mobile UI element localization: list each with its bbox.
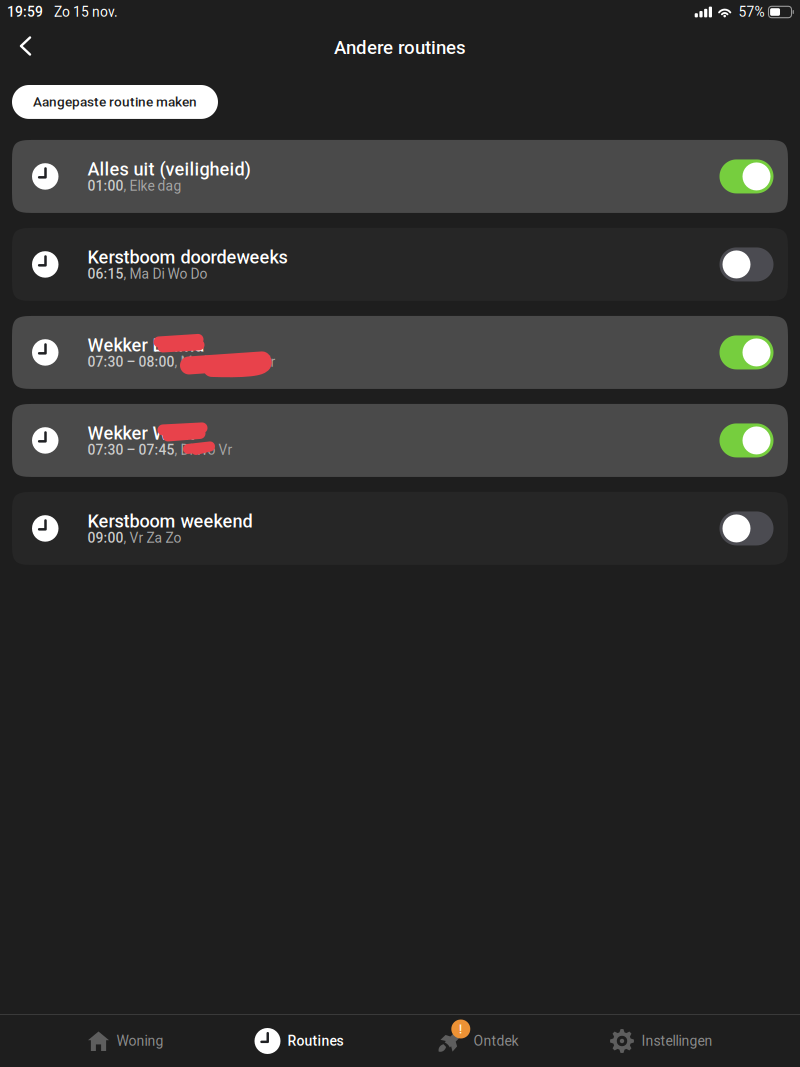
staticText: , Ma Di Wo Do Vr (174, 354, 275, 370)
staticText: 57% (738, 4, 764, 20)
staticText: Wekker Emma (87, 335, 204, 356)
staticText: Aangepaste routine maken (33, 94, 197, 110)
staticText: ! (459, 1021, 463, 1037)
staticText: 07:30 – 07:45 (87, 442, 174, 458)
staticText: 07:30 – 08:00 (87, 354, 174, 370)
staticText: Kerstboom doordeweeks (87, 247, 287, 268)
staticText: , Ma Di Wo Do (123, 266, 207, 282)
staticText: 06:15 (87, 266, 123, 282)
staticText: Zo 15 nov. (54, 4, 118, 20)
button[interactable]: Wekker Wout (12, 404, 788, 477)
button[interactable]: Instellingen (609, 1015, 712, 1067)
staticText: 19:59 (7, 4, 43, 20)
staticText: 01:00 (87, 178, 123, 194)
button[interactable]: Wekker Emma (12, 316, 788, 389)
staticText: Woning (116, 1033, 163, 1049)
staticText: Instellingen (641, 1033, 712, 1049)
staticText: Andere routines (334, 37, 466, 58)
staticText: , Di Wo Vr (174, 442, 232, 458)
staticText: Ontdek (473, 1033, 518, 1049)
button[interactable]: Back (9, 25, 42, 66)
staticText: Routines (287, 1033, 343, 1049)
staticText: , Vr Za Zo (123, 530, 181, 546)
button[interactable]: Aangepaste routine maken (12, 85, 218, 119)
staticText: Alles uit (veiligheid) (87, 159, 250, 180)
staticText: Wekker Wout (87, 423, 194, 444)
button[interactable]: Kerstboom weekend (12, 492, 788, 565)
staticText: 09:00 (87, 530, 123, 546)
button[interactable]: Kerstboom doordeweeks (12, 228, 788, 301)
button[interactable]: ! (434, 1015, 518, 1067)
button[interactable]: Alles uit (veiligheid) (12, 140, 788, 213)
staticText: , Elke dag (123, 178, 181, 194)
staticText: Kerstboom weekend (87, 511, 252, 532)
button[interactable]: Routines (254, 1015, 343, 1067)
button[interactable]: Woning (87, 1015, 163, 1067)
